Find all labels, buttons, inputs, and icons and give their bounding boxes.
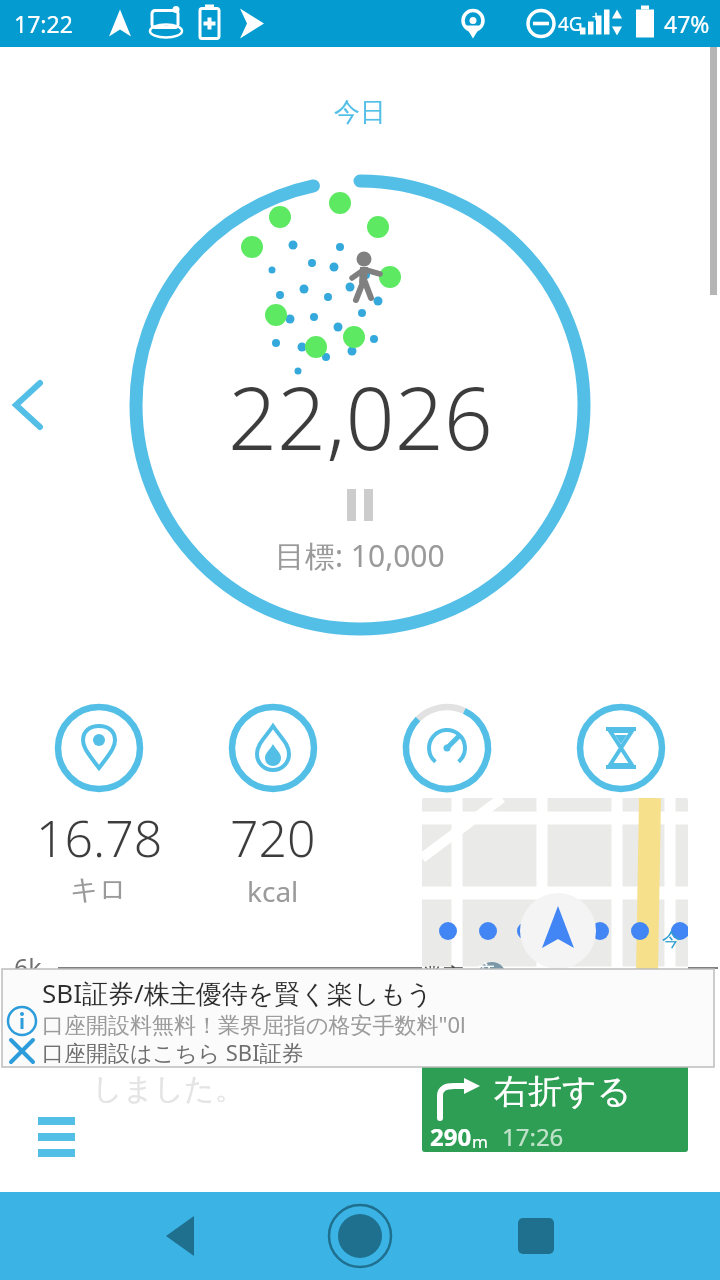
staticText: 右折する [494, 1070, 632, 1113]
staticText: 口座開設料無料！業界屈指の格安手数料"0l [42, 1009, 466, 1039]
button[interactable]: Menu [38, 1103, 88, 1151]
staticText: 4G [558, 11, 583, 37]
staticText: 業高 [422, 963, 464, 989]
staticText: 5 [433, 804, 462, 872]
button[interactable]: 今日 [334, 96, 386, 129]
button[interactable]: Home [324, 1200, 396, 1272]
button[interactable]: 5 [372, 700, 522, 910]
staticText: 22,026 [228, 358, 493, 475]
staticText: 高松中央高 [454, 1032, 569, 1061]
button[interactable] [546, 700, 696, 796]
staticText: 文 [478, 960, 495, 981]
button[interactable]: Ad info [6, 1005, 38, 1037]
staticText: 口座開設はこちら SBI証券 [42, 1037, 304, 1067]
staticText: 17:26 [502, 1120, 564, 1152]
staticText: 目標: 10,000 [275, 535, 445, 576]
staticText: m [472, 1130, 488, 1152]
staticText: 今 [662, 928, 681, 952]
button[interactable]: 右折する [422, 1064, 688, 1152]
staticText: 6k [14, 950, 42, 984]
staticText: 720 [230, 804, 316, 872]
staticText: しました。 [92, 1070, 245, 1108]
staticText: キロ [70, 872, 128, 907]
button[interactable]: 16.78 [24, 700, 174, 907]
staticText: 17:22 [14, 8, 73, 39]
button[interactable]: Recents [504, 1204, 568, 1268]
button[interactable]: Close ad [6, 1035, 38, 1067]
staticText: 47% [664, 8, 710, 39]
button[interactable]: 文 [422, 798, 688, 1152]
staticText: k [440, 872, 455, 910]
staticText: SBI証券/株主優待を賢く楽しもう [42, 975, 433, 1011]
button[interactable]: Back [152, 1204, 216, 1268]
staticText: 16.78 [36, 804, 163, 872]
staticText: 290 [430, 1120, 472, 1152]
button[interactable]: Previous day [0, 365, 56, 445]
button[interactable]: 720 [198, 700, 348, 910]
staticText: kcal [247, 872, 299, 910]
staticText: + [592, 7, 601, 26]
button[interactable]: SBI証券/株主優待を賢く楽しもう [2, 969, 714, 1067]
